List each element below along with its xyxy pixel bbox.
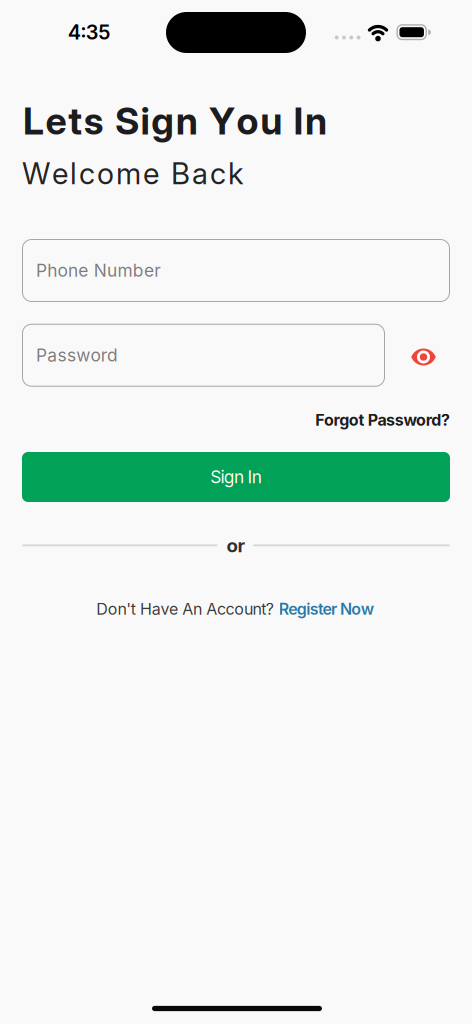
button[interactable]: Register Now: [279, 600, 374, 618]
staticText: e: [46, 99, 67, 143]
staticText: 4:35: [68, 20, 110, 44]
staticText: e: [52, 156, 68, 191]
staticText: n: [176, 99, 198, 143]
staticText: Register Now: [279, 600, 374, 618]
button[interactable]: Show password: [401, 339, 445, 375]
staticText: n: [305, 99, 327, 143]
staticText: Phone Number: [36, 260, 161, 281]
staticText: t: [68, 99, 82, 143]
staticText: L: [23, 99, 44, 143]
staticText: o: [237, 99, 259, 143]
staticText: I: [293, 99, 303, 143]
staticText: Password: [36, 345, 118, 365]
staticText: S: [115, 99, 139, 143]
staticText: k: [228, 156, 244, 191]
staticText: g: [151, 99, 174, 143]
staticText: i: [141, 99, 150, 143]
staticText: c: [210, 156, 226, 191]
staticText: c: [79, 156, 95, 191]
staticText: o: [97, 156, 114, 191]
staticText: a: [192, 156, 208, 191]
staticText: e: [143, 156, 159, 191]
staticText: W: [22, 156, 50, 191]
staticText: m: [116, 156, 141, 191]
staticText: Don't Have An Account?: [96, 600, 274, 618]
button[interactable]: Sign In: [22, 452, 450, 502]
staticText: u: [260, 99, 282, 143]
staticText: B: [171, 156, 190, 191]
staticText: or: [227, 534, 245, 556]
button[interactable]: Forgot Password?: [315, 411, 450, 429]
staticText: Forgot Password?: [315, 411, 450, 429]
staticText: Sign In: [210, 467, 262, 487]
staticText: s: [84, 99, 104, 143]
staticText: Y: [209, 99, 235, 143]
staticText: l: [70, 156, 77, 191]
